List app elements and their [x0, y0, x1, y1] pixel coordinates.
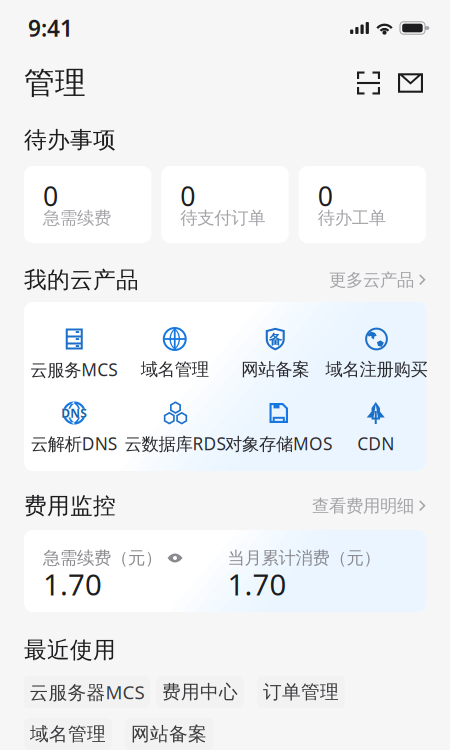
staticText: 对象存储MOS — [225, 432, 333, 455]
button[interactable]: 0 — [24, 166, 151, 243]
staticText: 最近使用 — [24, 636, 116, 664]
staticText: 域名管理 — [30, 722, 106, 745]
staticText: 急需续费 — [43, 207, 111, 229]
staticText: 云服务器MCS — [29, 680, 144, 704]
button[interactable]: 云服务MCS — [24, 326, 124, 377]
staticText: 0 — [180, 178, 195, 214]
button[interactable]: 查看费用明细 — [312, 492, 426, 520]
staticText: 域名管理 — [141, 359, 209, 380]
staticText: 备 — [269, 331, 282, 348]
button[interactable]: 更多云产品 — [329, 266, 426, 294]
staticText: 费用监控 — [24, 492, 116, 520]
staticText: 云解析DNS — [31, 432, 118, 455]
staticText: 更多云产品 — [329, 269, 414, 291]
button[interactable]: CDN — [325, 400, 426, 451]
button[interactable]: 云服务器MCS — [24, 676, 150, 708]
staticText: 云数据库RDS — [124, 432, 226, 455]
button[interactable]: 0 — [161, 166, 289, 243]
staticText: 待支付订单 — [180, 207, 265, 229]
staticText: 0 — [43, 178, 58, 214]
button[interactable]: 网站备案 — [125, 718, 213, 750]
staticText: 待办工单 — [318, 207, 386, 229]
button[interactable]: 显示金额 — [167, 552, 183, 564]
staticText: 查看费用明细 — [312, 495, 414, 517]
staticText: 当月累计消费（元） — [227, 547, 380, 569]
staticText: 云服务MCS — [30, 358, 118, 381]
staticText: 网站备案 — [131, 722, 207, 745]
button[interactable]: 扫一扫 — [348, 65, 389, 100]
staticText: 订单管理 — [263, 680, 339, 703]
button[interactable]: 费用中心 — [156, 676, 244, 708]
staticText: 待办事项 — [24, 126, 116, 154]
staticText: 1.70 — [43, 564, 102, 603]
staticText: 网站备案 — [241, 359, 309, 380]
button[interactable]: 备 — [225, 326, 325, 377]
button[interactable]: 0 — [299, 166, 426, 243]
staticText: 9:41 — [28, 13, 73, 43]
button[interactable]: 域名管理 — [124, 326, 225, 377]
button[interactable]: 域名管理 — [24, 718, 112, 750]
staticText: 0 — [318, 178, 333, 214]
button[interactable]: DNS — [24, 400, 124, 451]
staticText: 费用中心 — [162, 680, 238, 703]
button[interactable]: 域名注册购买 — [325, 326, 426, 377]
staticText: DNS — [61, 405, 87, 421]
staticText: 我的云产品 — [24, 266, 139, 294]
button[interactable]: 对象存储MOS — [225, 400, 325, 451]
button[interactable]: 消息 — [389, 67, 432, 99]
button[interactable]: 云数据库RDS — [124, 400, 225, 451]
staticText: 域名注册购买 — [325, 359, 427, 380]
staticText: 1.70 — [227, 564, 286, 603]
button[interactable]: 订单管理 — [257, 676, 345, 708]
staticText: CDN — [357, 432, 394, 455]
staticText: 管理 — [24, 64, 86, 102]
staticText: 急需续费（元） — [43, 547, 162, 569]
